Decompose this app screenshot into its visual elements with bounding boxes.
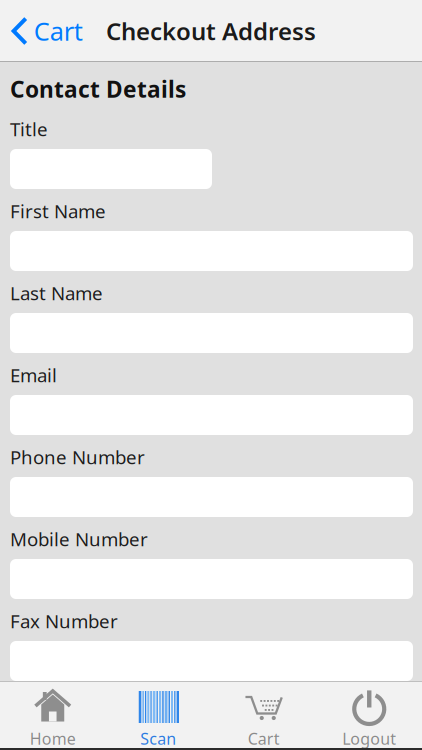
staticText: Cart — [248, 728, 280, 749]
staticText: Cart — [34, 14, 83, 48]
button[interactable]: Home — [0, 681, 105, 750]
staticText: Phone Number — [10, 445, 145, 469]
button[interactable]: Cart — [0, 0, 91, 62]
button[interactable]: Scan — [105, 681, 211, 750]
button[interactable]: Cart — [211, 681, 316, 750]
staticText: Logout — [342, 728, 396, 749]
staticText: Mobile Number — [10, 527, 148, 551]
button[interactable]: Logout — [316, 681, 422, 750]
staticText: Home — [30, 728, 76, 749]
staticText: Email — [10, 363, 57, 387]
staticText: Contact Details — [10, 74, 186, 104]
staticText: Scan — [140, 728, 176, 749]
staticText: Title — [10, 117, 48, 141]
staticText: Checkout Address — [106, 15, 316, 47]
staticText: Last Name — [10, 281, 103, 305]
staticText: Fax Number — [10, 609, 118, 633]
staticText: First Name — [10, 199, 106, 223]
